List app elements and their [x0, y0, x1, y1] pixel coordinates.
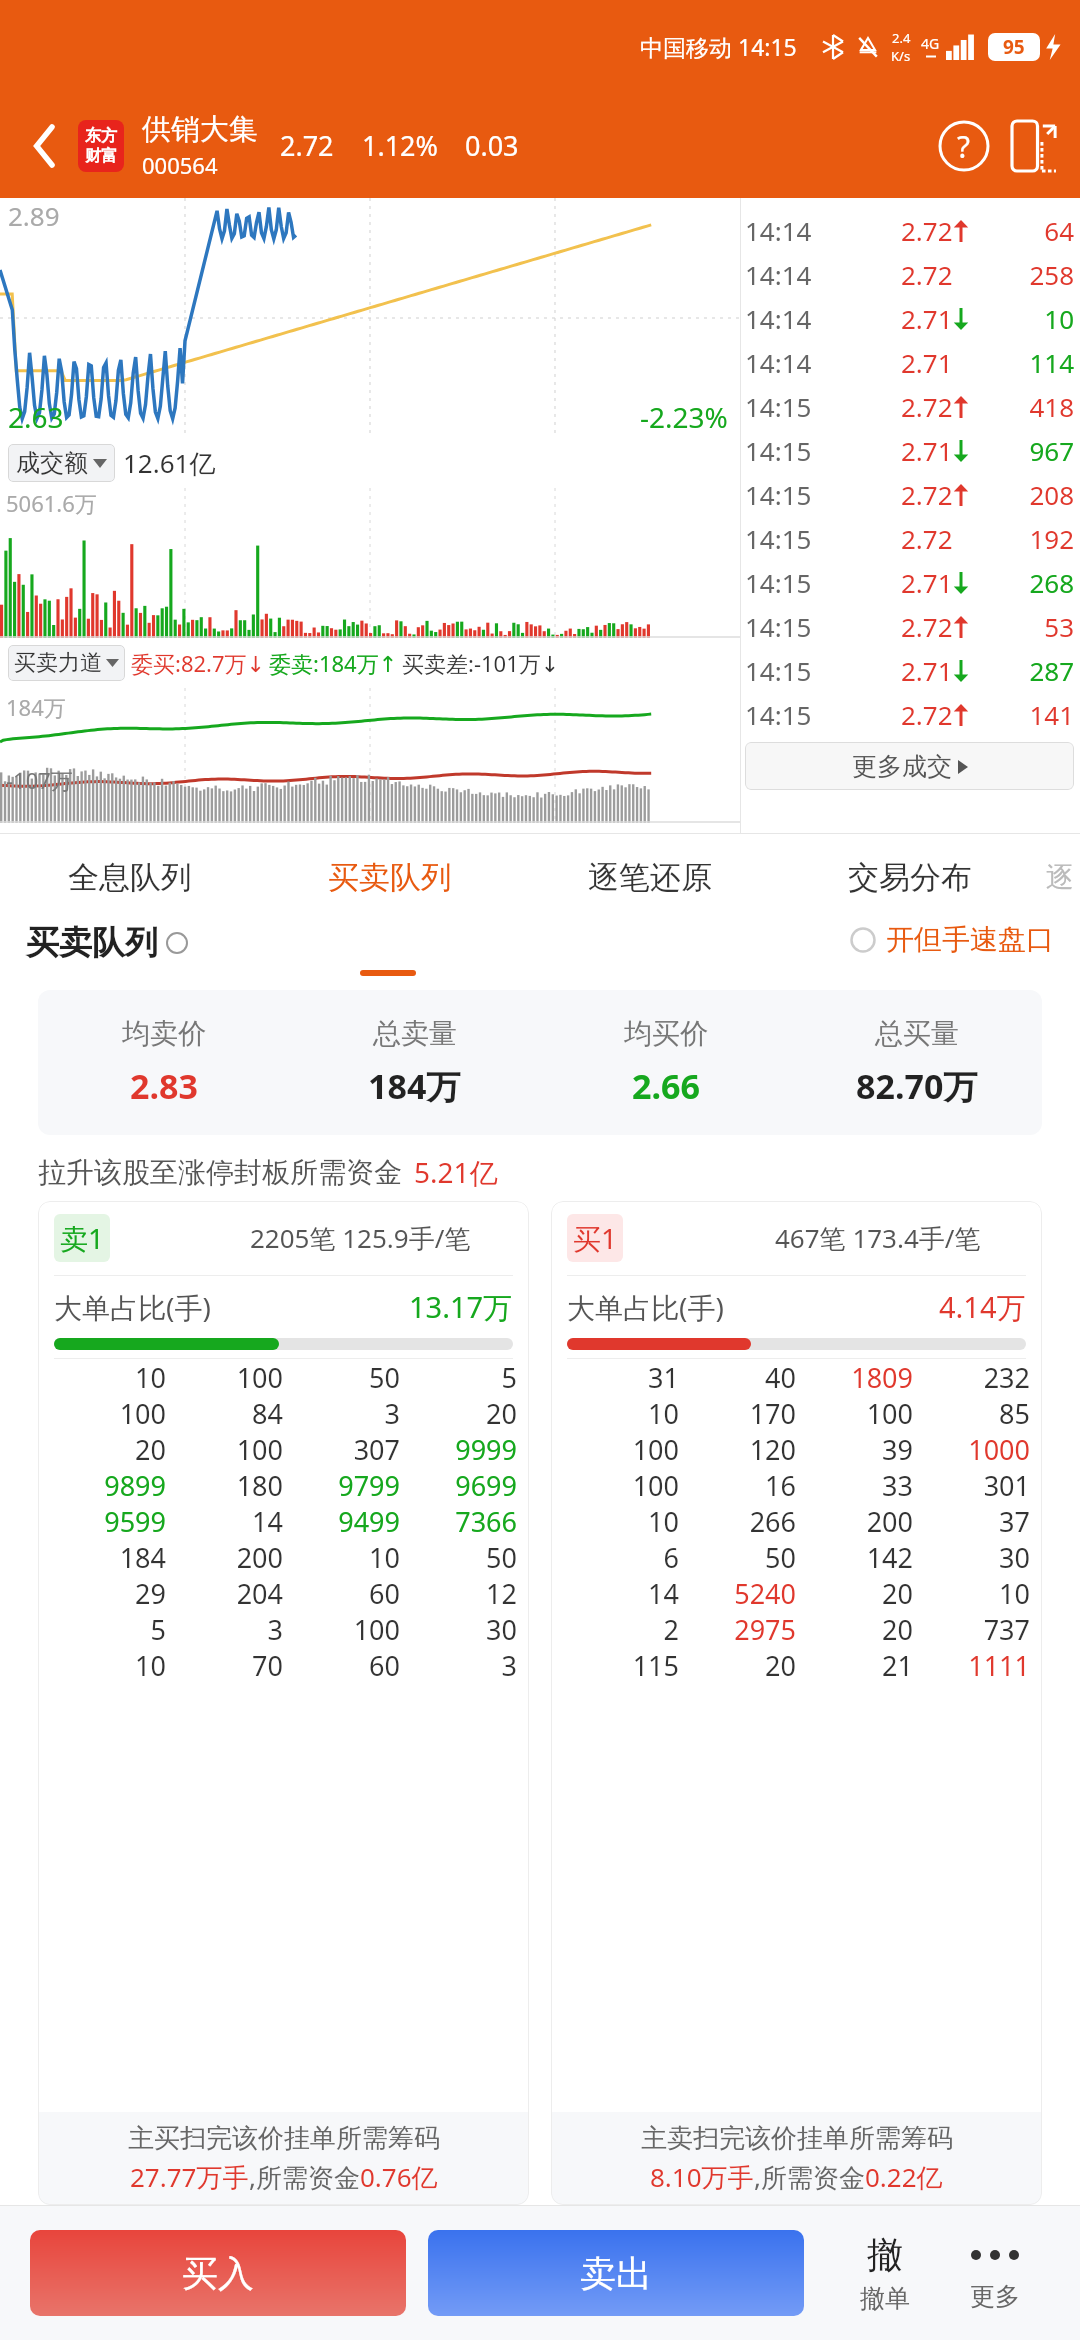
staticText: 5 — [50, 1611, 166, 1647]
button[interactable]: 卖出 — [428, 2230, 804, 2316]
staticText: 13.17万 — [409, 1287, 513, 1327]
staticText: 60 — [283, 1575, 400, 1611]
button[interactable]: 14:15 — [745, 428, 1074, 472]
staticText: 14:15 — [745, 697, 855, 732]
button[interactable]: 买入 — [30, 2230, 406, 2316]
staticText: 买卖差:-101万↓ — [402, 648, 560, 678]
staticText: 10 — [563, 1503, 679, 1539]
button[interactable]: 买卖队列 — [260, 834, 520, 920]
staticText: 总卖量 — [373, 1016, 457, 1051]
button[interactable]: 逐笔还原 — [520, 834, 780, 920]
staticText: 成交额 — [16, 448, 88, 478]
staticText: 拉升该股至涨停封板所需资金 — [38, 1155, 402, 1190]
staticText: 买卖队列 — [26, 922, 158, 964]
button[interactable]: Rotate screen — [1006, 118, 1062, 174]
staticText: 14:14 — [745, 213, 855, 248]
staticText: 2.72 — [901, 257, 953, 292]
button[interactable]: 成交额 — [8, 444, 115, 482]
button[interactable]: 撤 — [830, 2206, 940, 2340]
staticText: 2.72 — [901, 609, 953, 644]
staticText: 2205笔 125.9手/笔 — [250, 1220, 471, 1256]
staticText: 6 — [563, 1539, 679, 1575]
staticText: 更多成交 — [852, 751, 952, 782]
staticText: 14:15 — [745, 477, 855, 512]
staticText: 12.61亿 — [123, 445, 216, 481]
staticText: 287 — [982, 653, 1074, 688]
button[interactable]: Back — [16, 117, 74, 175]
staticText: 交易分布 — [848, 858, 972, 897]
staticText: 14 — [563, 1575, 679, 1611]
button[interactable]: 14:15 — [745, 516, 1074, 560]
button[interactable]: 14:14 — [745, 208, 1074, 252]
button[interactable]: 更多成交 — [745, 742, 1074, 790]
staticText: 主买扫完该价挂单所需筹码 — [128, 2122, 440, 2155]
staticText: 10 — [913, 1575, 1030, 1611]
button[interactable]: 14:15 — [745, 472, 1074, 516]
button[interactable]: 14:15 — [745, 604, 1074, 648]
button[interactable]: 14:15 — [745, 560, 1074, 604]
staticText: 100 — [283, 1611, 400, 1647]
button[interactable]: 14:15 — [745, 384, 1074, 428]
staticText: 30 — [400, 1611, 517, 1647]
staticText: 逐 — [1046, 860, 1074, 895]
button[interactable]: 买1 — [551, 1201, 1042, 2205]
staticText: 10 — [563, 1395, 679, 1431]
button[interactable]: 全息队列 — [0, 834, 260, 920]
staticText: 供销大集 — [142, 111, 258, 148]
staticText: 20 — [50, 1431, 166, 1467]
staticText: 12 — [400, 1575, 517, 1611]
staticText: 84 — [166, 1395, 283, 1431]
staticText: 14:15 — [745, 521, 855, 556]
button[interactable]: 14:14 — [745, 340, 1074, 384]
staticText: 115 — [563, 1647, 679, 1683]
button[interactable]: 买卖力道 — [8, 645, 125, 681]
staticText: 主卖扫完该价挂单所需筹码 — [641, 2122, 953, 2155]
staticText: 5240 — [679, 1575, 796, 1611]
button[interactable]: 交易分布 — [780, 834, 1040, 920]
staticText: 9999 — [400, 1431, 517, 1467]
staticText: 2.71 — [901, 653, 953, 688]
staticText: 2.72 — [901, 521, 953, 556]
staticText: 50 — [679, 1539, 796, 1575]
staticText: 撤 — [867, 2232, 903, 2277]
staticText: 27.77万手 — [130, 2159, 249, 2195]
staticText: 2975 — [679, 1611, 796, 1647]
button[interactable]: 14:15 — [745, 648, 1074, 692]
staticText: 9899 — [50, 1467, 166, 1503]
staticText: 9699 — [400, 1467, 517, 1503]
button[interactable]: 14:14 — [745, 252, 1074, 296]
staticText: 0.03 — [465, 127, 519, 164]
staticText: 100 — [166, 1359, 283, 1395]
staticText: -107万 — [6, 765, 73, 795]
staticText: 均买价 — [624, 1016, 708, 1051]
staticText: 301 — [913, 1467, 1030, 1503]
staticText: 2.71 — [901, 565, 953, 600]
staticText: 40 — [679, 1359, 796, 1395]
staticText: 142 — [796, 1539, 913, 1575]
button[interactable]: East Money — [78, 120, 124, 172]
staticText: 1000 — [913, 1431, 1030, 1467]
staticText: 14:15 — [745, 565, 855, 600]
staticText: 53 — [982, 609, 1074, 644]
button[interactable]: More — [940, 2206, 1050, 2340]
staticText: 5.21亿 — [414, 1153, 498, 1191]
staticText: 20 — [796, 1575, 913, 1611]
staticText: 14:15 — [745, 433, 855, 468]
button[interactable]: 卖1 — [38, 1201, 529, 2205]
button[interactable]: 14:14 — [745, 296, 1074, 340]
staticText: 2.72 — [280, 127, 334, 164]
staticText: 1111 — [913, 1647, 1030, 1683]
staticText: 14:14 — [745, 301, 855, 336]
staticText: 2.66 — [632, 1063, 700, 1109]
button[interactable]: 14:15 — [745, 692, 1074, 736]
staticText: 撤单 — [860, 2283, 910, 2314]
staticText: 268 — [982, 565, 1074, 600]
staticText: 20 — [679, 1647, 796, 1683]
staticText: 委买:82.7万↓ — [131, 648, 265, 678]
staticText: 2.63 — [8, 398, 64, 436]
staticText: 14:15 — [745, 389, 855, 424]
staticText: 更多 — [970, 2281, 1020, 2312]
button[interactable]: Help — [934, 116, 994, 176]
button[interactable]: 均卖价 — [38, 990, 1042, 1135]
